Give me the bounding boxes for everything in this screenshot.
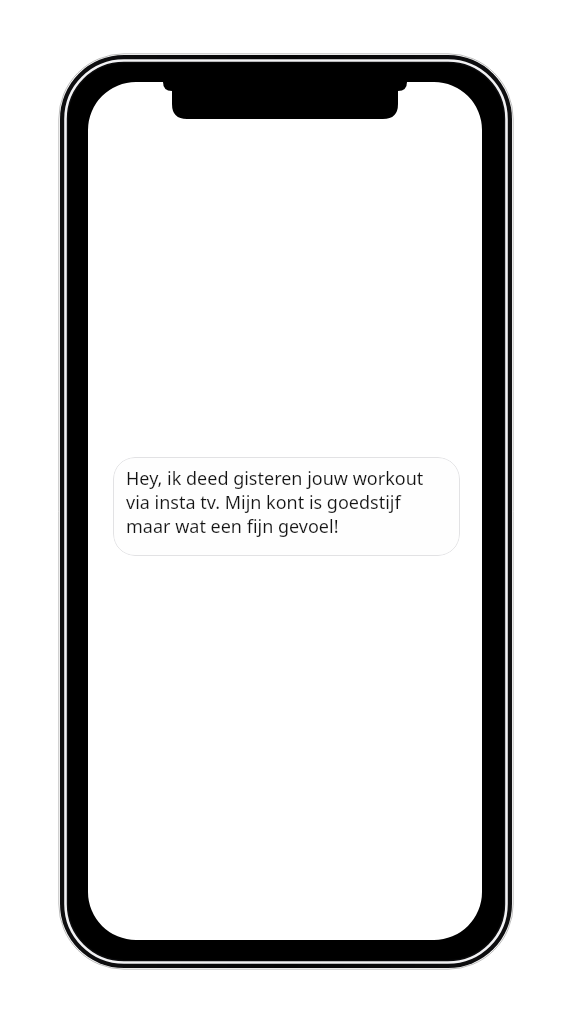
staticText: Hey, ik deed gisteren jouw workout via i… bbox=[126, 466, 424, 538]
button[interactable]: Received message bbox=[113, 457, 460, 556]
